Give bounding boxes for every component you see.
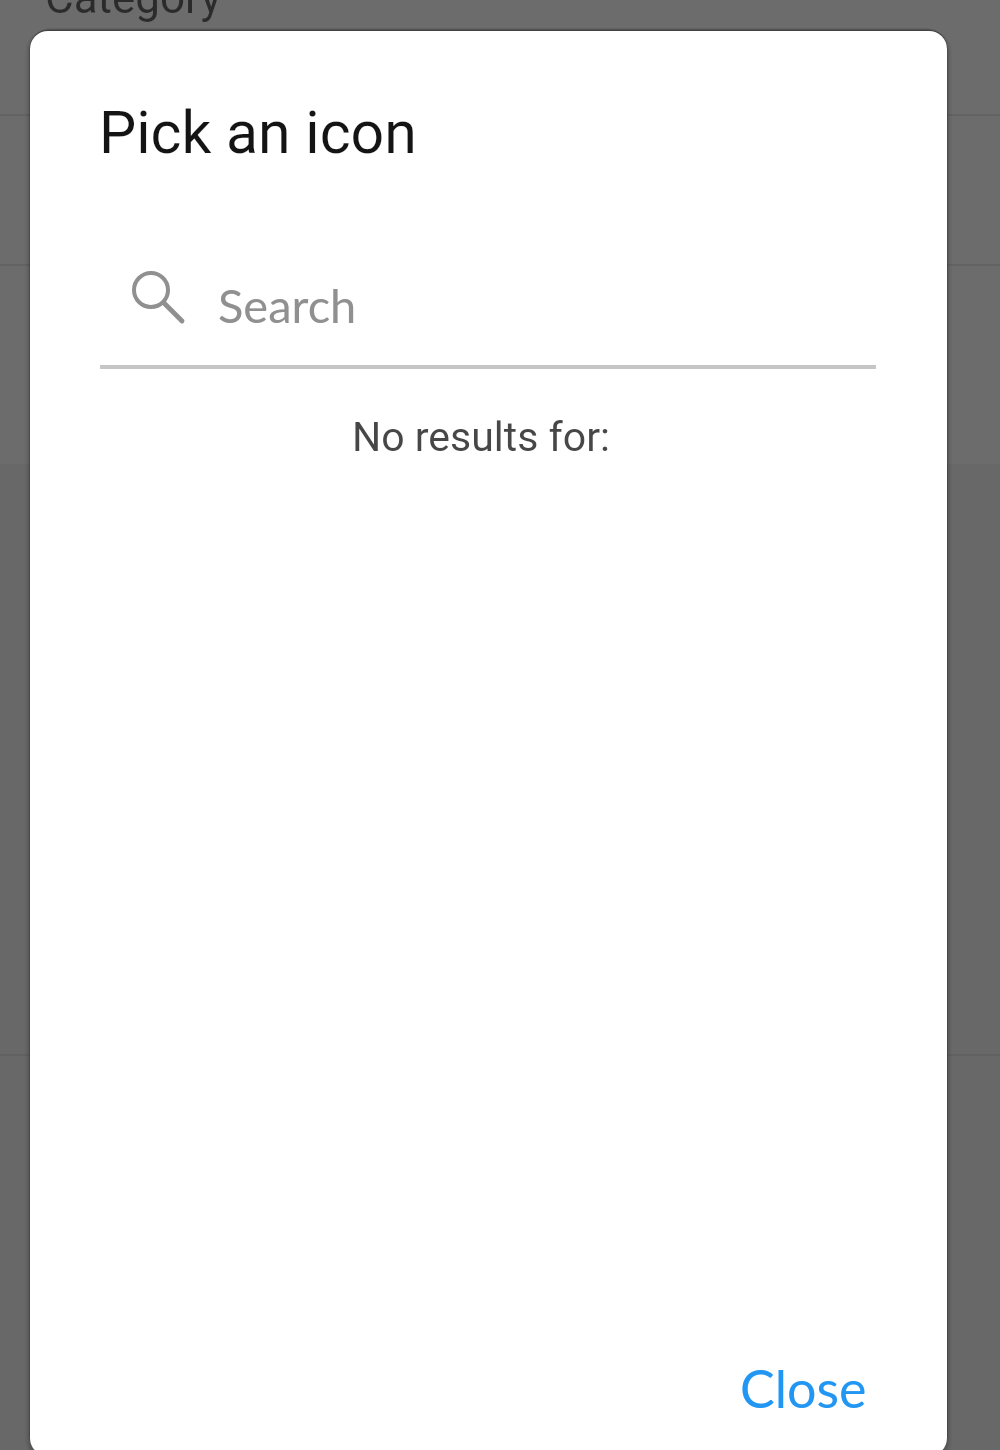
button[interactable]: Close — [714, 1339, 893, 1437]
other: Search — [132, 271, 196, 335]
button[interactable]: Search — [100, 253, 876, 369]
staticText: Pick an icon — [99, 98, 417, 167]
staticText: Close — [740, 1357, 867, 1419]
staticText: Search — [218, 277, 357, 333]
staticText: Category — [45, 0, 222, 24]
staticText: No results for: — [352, 413, 610, 461]
